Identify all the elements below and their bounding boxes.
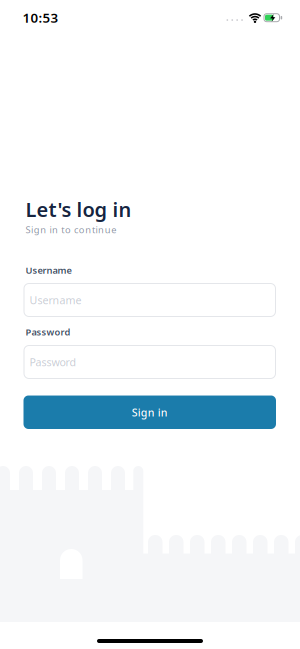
staticText: Sign in [132,405,168,419]
button[interactable]: Username [23,283,276,317]
staticText: Username [25,264,71,276]
staticText: Sign in to continue [25,223,116,236]
button[interactable]: Password [23,345,276,379]
staticText: 10:53 [22,9,58,26]
staticText: Password [29,355,76,369]
staticText: Username [29,293,81,307]
button[interactable]: Sign in [23,395,276,429]
staticText: Let's log in [25,196,131,223]
staticText: Password [25,326,70,338]
